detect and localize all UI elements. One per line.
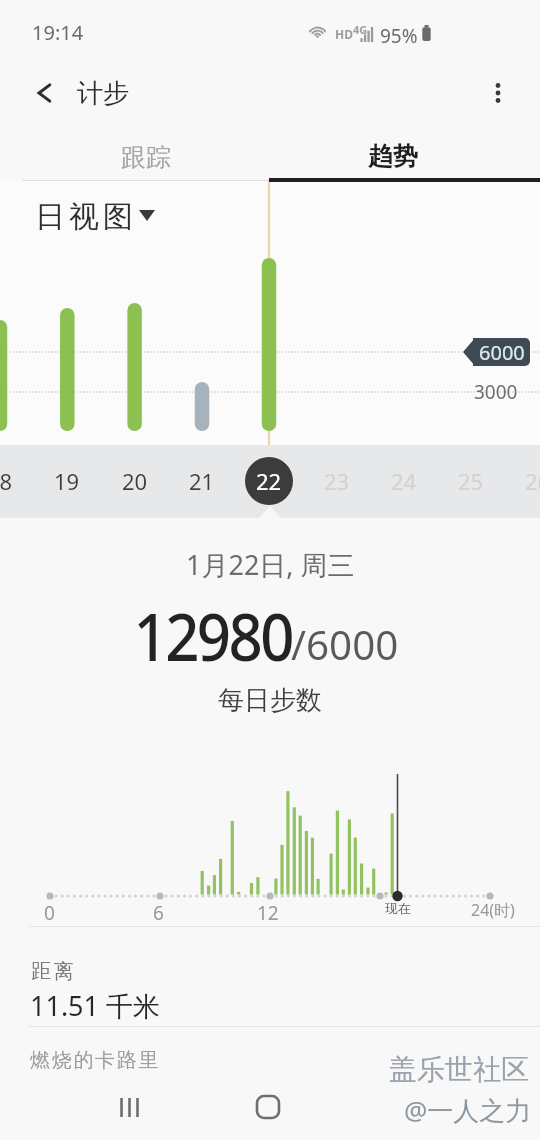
staticText: 19: [54, 466, 80, 496]
staticText: 6: [153, 900, 164, 926]
button[interactable]: 趋势: [269, 128, 540, 184]
button[interactable]: 18: [0, 457, 24, 505]
button[interactable]: 25: [447, 457, 495, 505]
staticText: 23: [324, 466, 350, 496]
staticText: 4G: [353, 22, 368, 37]
staticText: 6000: [479, 339, 525, 366]
staticText: 21: [189, 466, 215, 496]
staticText: 19:14: [32, 19, 84, 46]
staticText: 跟踪: [121, 142, 171, 173]
staticText: 0: [44, 900, 55, 926]
button[interactable]: 距离: [0, 926, 540, 1026]
other: Back: [30, 78, 60, 108]
staticText: 11.51 千米: [30, 987, 161, 1024]
staticText: 12: [257, 900, 279, 926]
button[interactable]: 21: [178, 457, 226, 505]
button[interactable]: 23: [313, 457, 361, 505]
staticText: 距离: [30, 959, 75, 984]
button[interactable]: 22: [245, 457, 293, 505]
button[interactable]: Home: [240, 1079, 296, 1135]
staticText: 燃烧的卡路里: [30, 1048, 161, 1073]
staticText: 3000: [474, 379, 518, 405]
staticText: 20: [122, 466, 148, 496]
staticText: 日视图: [33, 198, 135, 236]
staticText: 盖乐世社区: [389, 1052, 529, 1087]
staticText: 25: [458, 466, 484, 496]
staticText: 18: [0, 466, 13, 496]
button[interactable]: 日视图: [28, 192, 163, 240]
staticText: 12980: [133, 592, 292, 680]
button[interactable]: 跟踪: [0, 128, 269, 184]
staticText: /6000: [291, 617, 398, 671]
staticText: 趋势: [368, 141, 418, 172]
staticText: 计步: [77, 77, 129, 110]
button[interactable]: 19: [43, 457, 91, 505]
button[interactable]: 26: [514, 457, 540, 505]
button[interactable]: Back: [30, 62, 540, 124]
staticText: 24: [391, 466, 417, 496]
button[interactable]: More options: [476, 71, 520, 115]
staticText: @一人之力: [404, 1092, 532, 1128]
button[interactable]: 燃烧的卡路里: [0, 1027, 540, 1086]
staticText: 95%: [380, 23, 418, 49]
button[interactable]: 24: [380, 457, 428, 505]
staticText: 22: [256, 466, 282, 496]
staticText: 现在: [385, 900, 411, 916]
staticText: 24(时): [471, 899, 515, 921]
button[interactable]: Recents: [101, 1079, 157, 1135]
button[interactable]: 20: [111, 457, 159, 505]
staticText: HD: [335, 26, 353, 42]
staticText: 1月22日, 周三: [186, 546, 355, 583]
staticText: 每日步数: [218, 684, 322, 717]
staticText: 26: [525, 466, 540, 496]
